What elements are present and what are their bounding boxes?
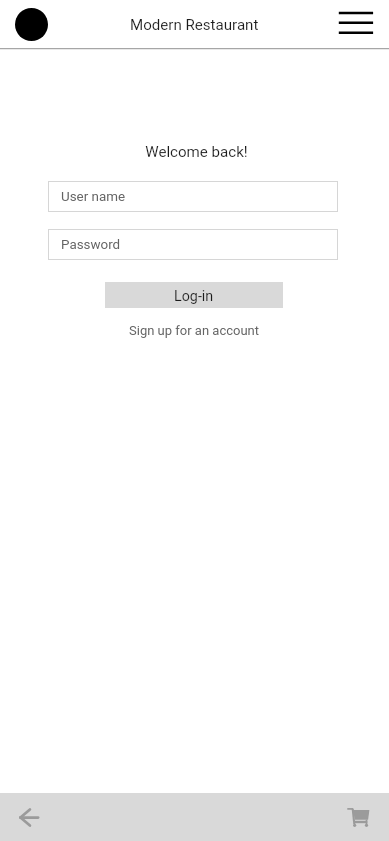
button[interactable]: Sign up for an account [0, 323, 389, 338]
staticText: Welcome back! [2, 143, 389, 161]
button[interactable]: User name [48, 181, 338, 212]
button[interactable]: Back [8, 797, 48, 837]
button[interactable]: Restaurant logo [15, 8, 48, 41]
staticText: User name [61, 189, 126, 205]
staticText: Sign up for an account [129, 323, 260, 338]
staticText: Log-in [174, 288, 214, 305]
button[interactable]: Menu [333, 4, 379, 44]
staticText: Modern Restaurant [130, 16, 259, 34]
button[interactable]: Shopping cart [340, 797, 380, 837]
button[interactable]: Password [48, 229, 338, 260]
button[interactable]: Log-in [105, 282, 283, 308]
staticText: Password [61, 237, 121, 253]
